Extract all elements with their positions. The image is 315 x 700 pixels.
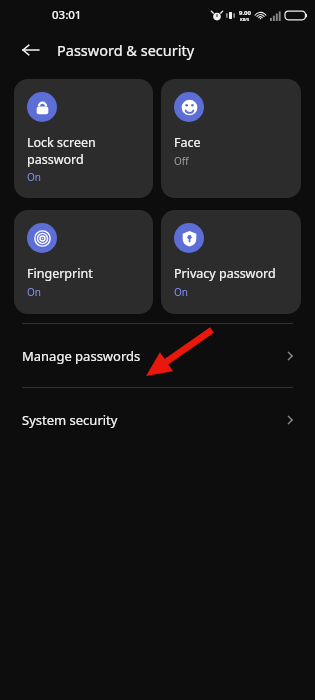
button[interactable]: Lock screen password [14, 79, 153, 198]
button[interactable]: Privacy password [161, 210, 301, 314]
staticText: System security [22, 411, 283, 429]
staticText: 03:01 [52, 7, 82, 23]
staticText: On [27, 170, 41, 184]
staticText: 9.00 [239, 9, 251, 17]
staticText: Privacy password [174, 265, 276, 282]
button[interactable]: Manage passwords [0, 324, 315, 387]
button[interactable]: System security [0, 388, 315, 451]
button[interactable]: Fingerprint [14, 210, 153, 314]
button[interactable]: Back [14, 33, 48, 67]
staticText: KB/S [240, 17, 250, 22]
staticText: Fingerprint [27, 265, 93, 282]
staticText: Off [174, 154, 189, 168]
staticText: Lock screen password [27, 134, 96, 167]
staticText: On [27, 285, 41, 299]
staticText: Face [174, 134, 201, 151]
staticText: Manage passwords [22, 347, 283, 365]
button[interactable]: Face [161, 79, 301, 198]
staticText: On [174, 285, 188, 299]
staticText: Password & security [57, 40, 195, 60]
